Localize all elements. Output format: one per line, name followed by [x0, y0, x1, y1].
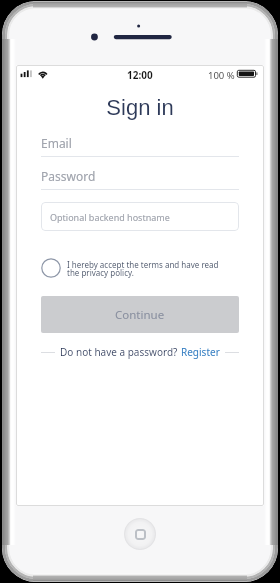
staticText: Optional backend hostname	[50, 211, 170, 223]
button[interactable]: Email	[41, 135, 239, 157]
staticText: Register	[181, 345, 220, 359]
staticText: I hereby accept the terms and have read …	[67, 259, 221, 278]
staticText: 12:00	[127, 68, 153, 82]
staticText: Email	[41, 135, 72, 151]
staticText: Sign in	[16, 95, 264, 120]
button[interactable]: Optional backend hostname	[41, 202, 239, 231]
staticText: 100 %	[208, 69, 235, 82]
staticText: Continue	[115, 307, 165, 323]
staticText: Password	[41, 168, 96, 184]
button[interactable]: I hereby accept the terms and have read …	[41, 258, 239, 278]
button[interactable]: Home	[124, 518, 156, 550]
staticText: Do not have a password?	[60, 345, 178, 359]
button[interactable]: Register	[181, 345, 220, 359]
button[interactable]: Password	[41, 168, 239, 190]
button[interactable]: Continue	[41, 296, 239, 333]
